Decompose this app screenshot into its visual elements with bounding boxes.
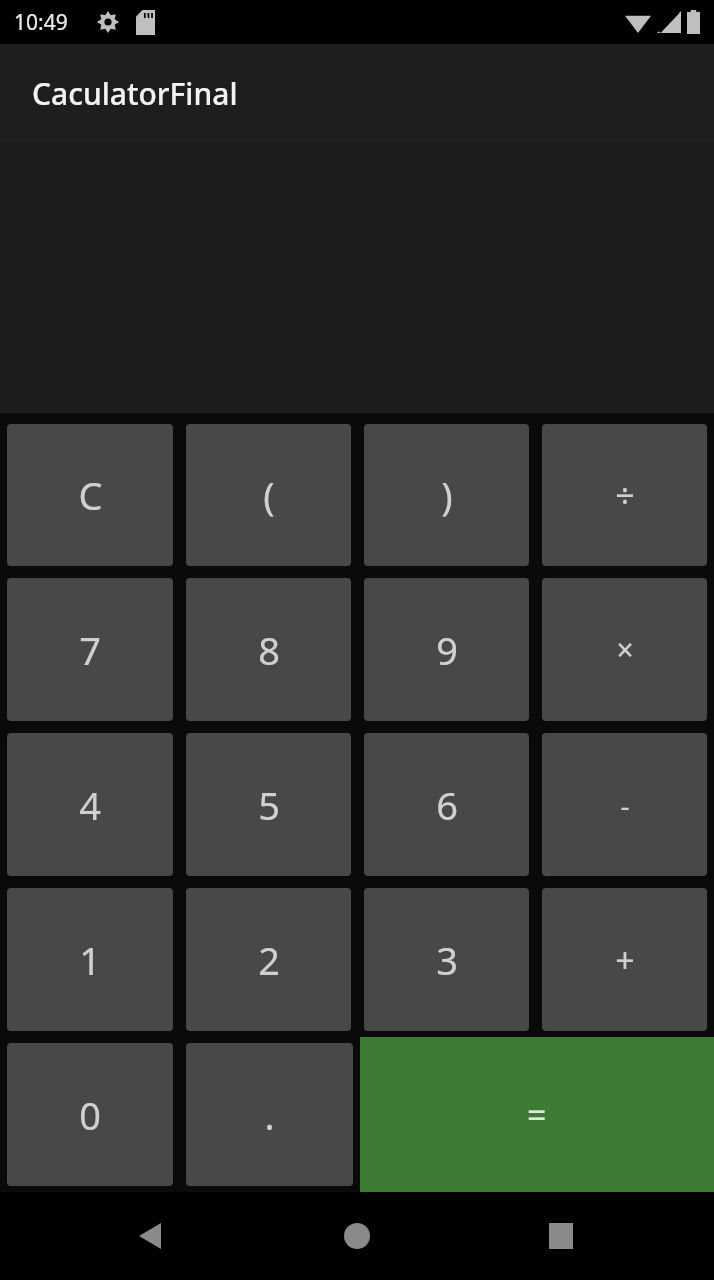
button[interactable]: 5 — [186, 733, 351, 876]
staticText: ÷ — [615, 472, 635, 518]
button[interactable]: 4 — [7, 733, 173, 876]
staticText: ) — [441, 469, 453, 521]
button[interactable]: ÷ — [542, 424, 707, 566]
staticText: 8 — [258, 624, 280, 676]
staticText: × — [616, 629, 634, 670]
button[interactable]: 8 — [186, 578, 351, 721]
staticText: C — [78, 469, 103, 521]
button[interactable]: ) — [364, 424, 529, 566]
button[interactable]: 7 — [7, 578, 173, 721]
button[interactable]: 9 — [364, 578, 529, 721]
button[interactable]: 6 — [364, 733, 529, 876]
staticText: 9 — [436, 624, 458, 676]
button[interactable]: Back — [126, 1212, 174, 1260]
button[interactable]: Home — [333, 1212, 381, 1260]
button[interactable]: + — [542, 888, 707, 1031]
staticText: - — [620, 786, 630, 824]
staticText: . — [264, 1089, 275, 1141]
staticText: 2 — [258, 934, 280, 986]
staticText: ( — [263, 469, 275, 521]
button[interactable]: - — [542, 733, 707, 876]
staticText: 3 — [436, 934, 458, 986]
button[interactable]: ( — [186, 424, 351, 566]
staticText: 10:49 — [14, 8, 68, 37]
button[interactable]: 2 — [186, 888, 351, 1031]
staticText: 0 — [79, 1089, 101, 1141]
staticText: 6 — [436, 779, 458, 831]
button[interactable]: = — [360, 1037, 714, 1192]
staticText: 4 — [79, 779, 101, 831]
button[interactable]: C — [7, 424, 173, 566]
staticText: 5 — [258, 779, 280, 831]
staticText: + — [615, 937, 635, 983]
button[interactable]: . — [186, 1043, 353, 1186]
button[interactable]: 0 — [7, 1043, 173, 1186]
button[interactable]: × — [542, 578, 707, 721]
staticText: 1 — [79, 934, 101, 986]
button[interactable]: 1 — [7, 888, 173, 1031]
staticText: CaculatorFinal — [32, 73, 238, 114]
staticText: = — [527, 1092, 547, 1138]
button[interactable]: 3 — [364, 888, 529, 1031]
button[interactable]: Recent apps — [537, 1212, 585, 1260]
staticText: 7 — [79, 624, 101, 676]
